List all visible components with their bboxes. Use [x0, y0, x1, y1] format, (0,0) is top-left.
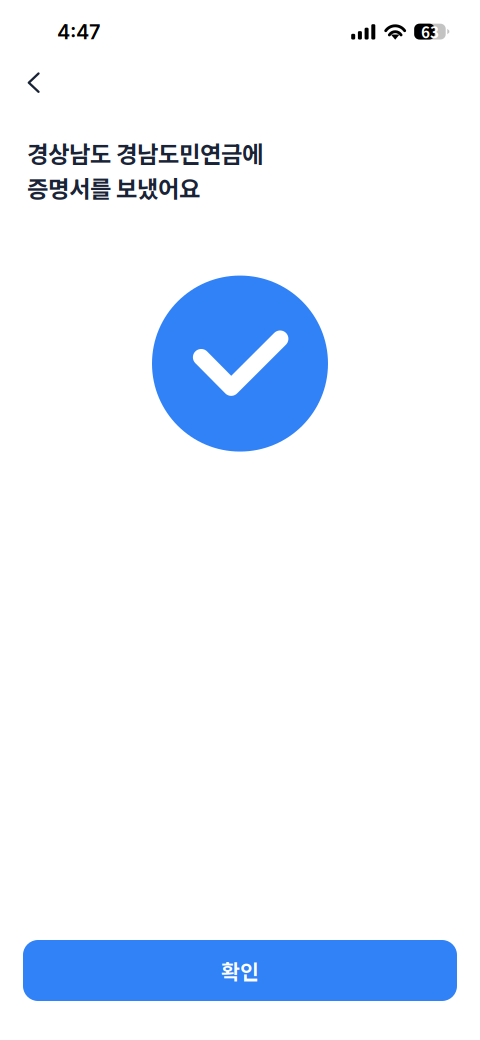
button[interactable]: 확인: [23, 940, 457, 1001]
button[interactable]: Back: [6, 56, 50, 100]
staticText: 4:47: [57, 20, 100, 44]
staticText: 경상남도 경남도민연금에 증명서를 보냈어요: [27, 136, 263, 205]
staticText: 확인: [221, 956, 259, 985]
staticText: 63: [421, 20, 439, 43]
